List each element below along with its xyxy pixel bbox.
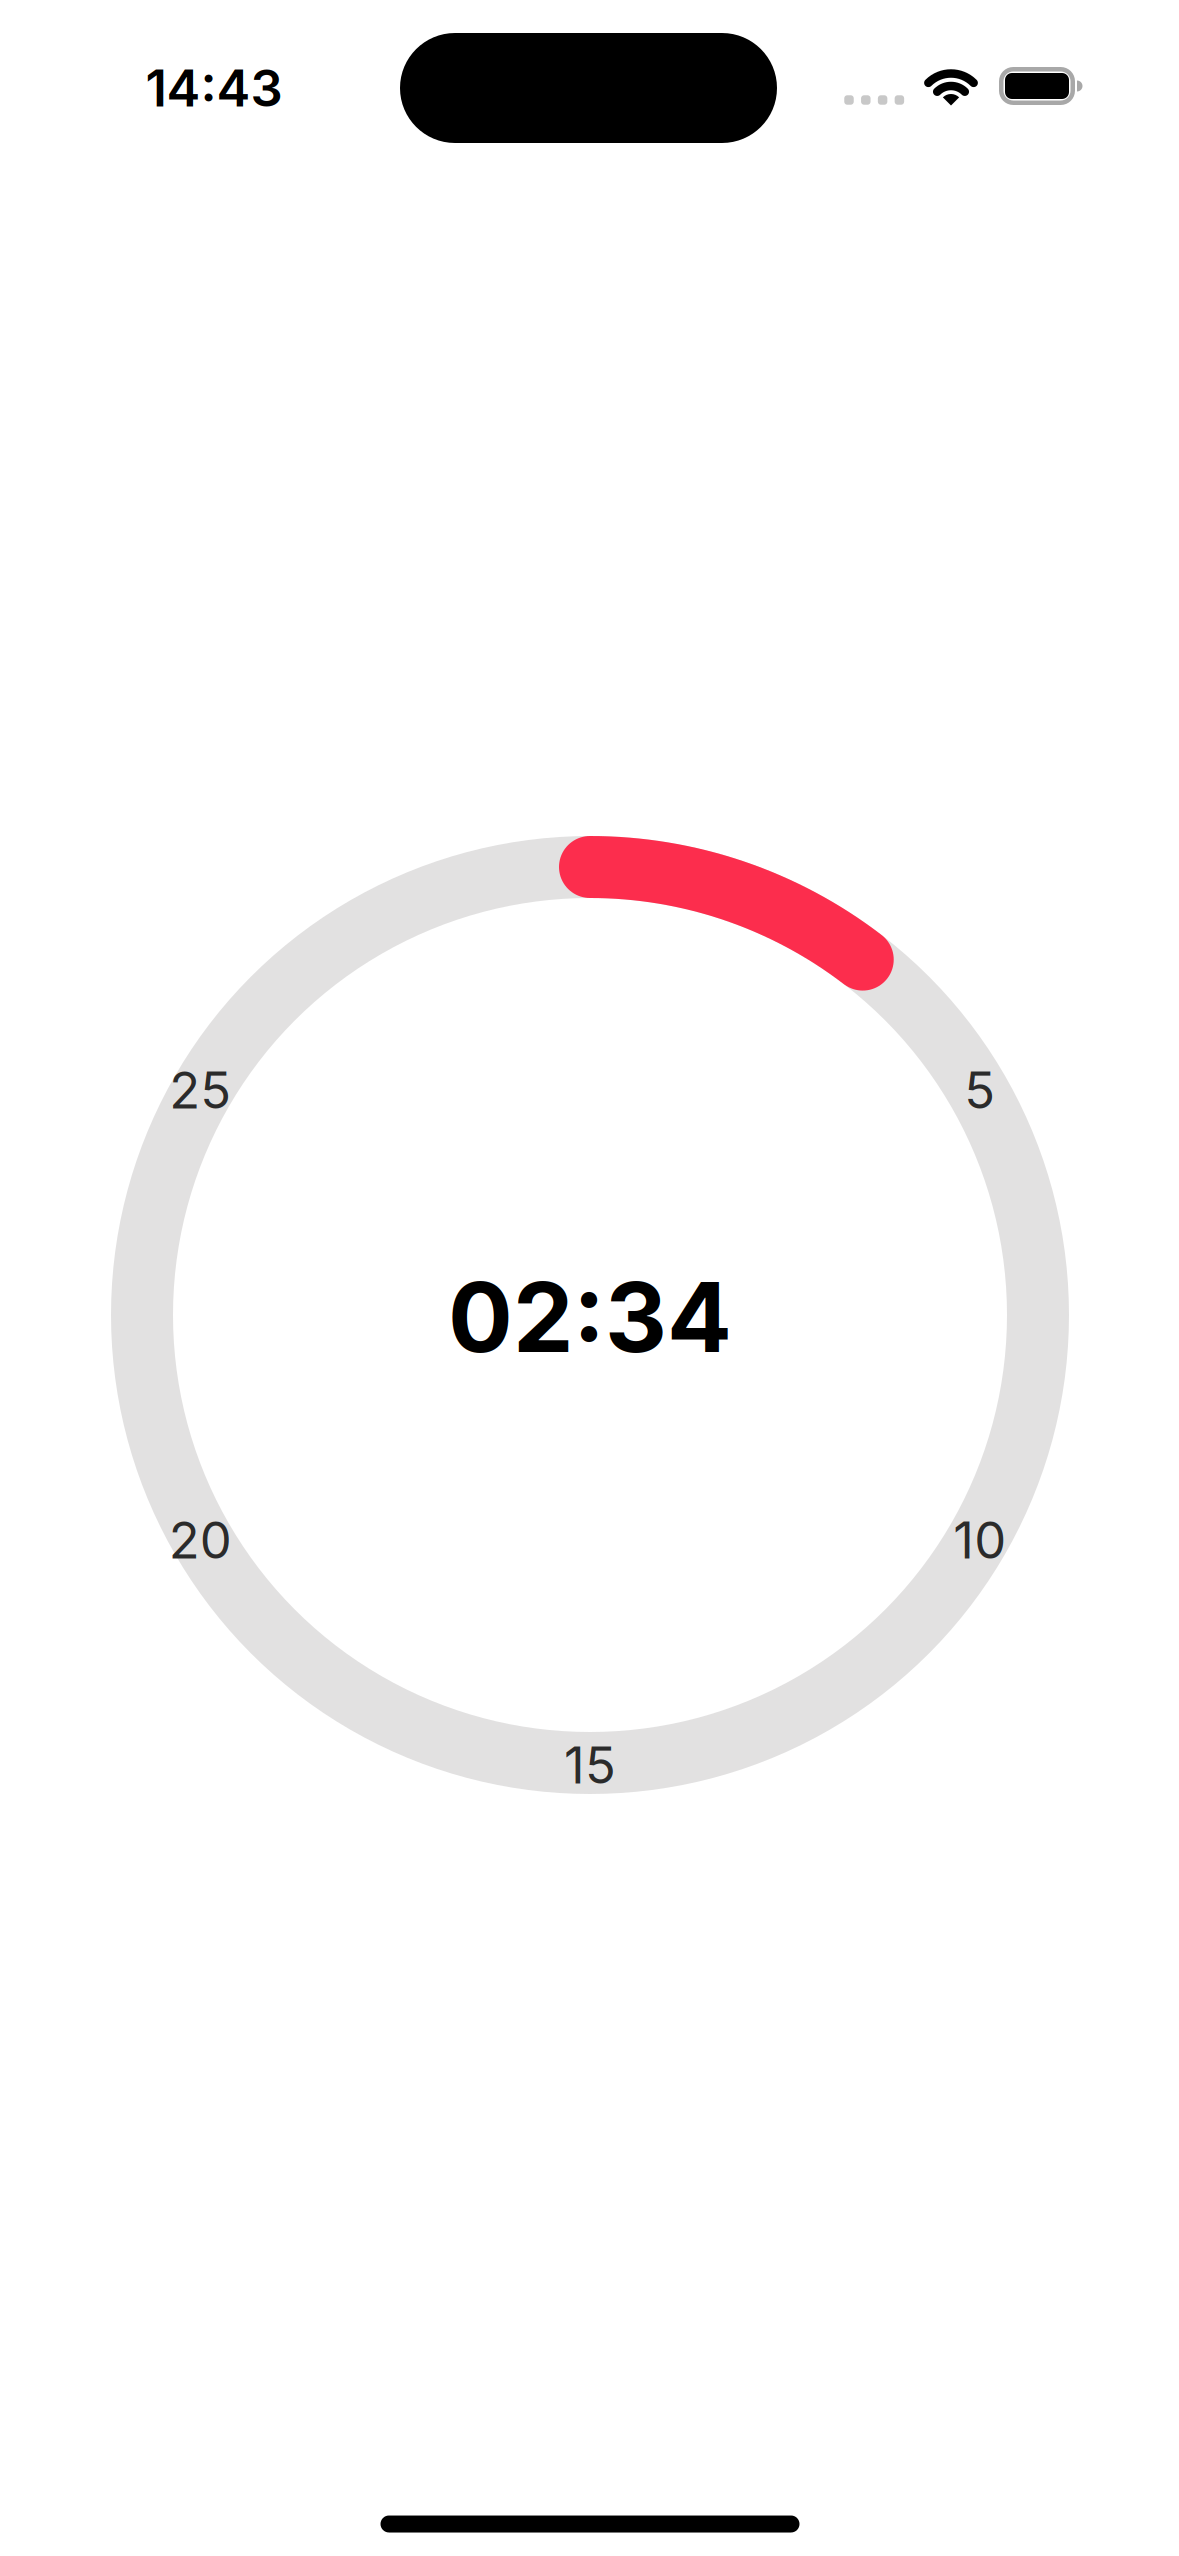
staticText: 02:34 xyxy=(448,1260,732,1374)
staticText: 20 xyxy=(169,1510,232,1570)
staticText: 5 xyxy=(964,1060,995,1120)
staticText: 14:43 xyxy=(145,58,282,118)
staticText: 10 xyxy=(953,1510,1006,1570)
staticText: 15 xyxy=(564,1735,616,1795)
staticText: 25 xyxy=(169,1060,231,1120)
